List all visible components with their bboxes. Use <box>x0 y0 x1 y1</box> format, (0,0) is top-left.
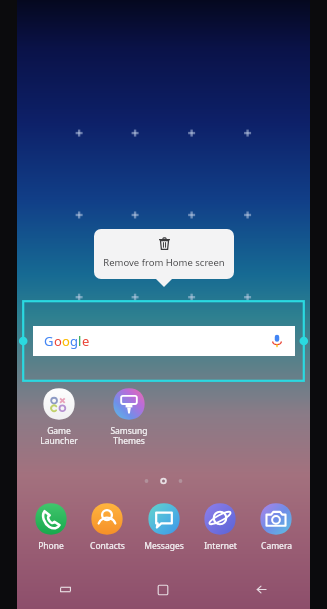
other: Samsung Themes <box>112 387 146 421</box>
staticText: Messages <box>144 540 184 552</box>
staticText: l <box>78 332 82 350</box>
button[interactable]: Samsung Themes <box>101 387 157 446</box>
staticText: o <box>62 332 70 350</box>
staticText: Remove from Home screen <box>103 256 225 269</box>
other: Contacts <box>90 502 124 536</box>
other: Voice search <box>270 334 284 348</box>
other: Game Launcher <box>42 387 76 421</box>
staticText: e <box>82 332 90 350</box>
button[interactable]: Camera <box>250 502 302 552</box>
staticText: G <box>44 332 54 350</box>
button[interactable]: Contacts <box>81 502 133 552</box>
staticText: Contacts <box>90 540 125 552</box>
button[interactable]: Home <box>114 570 212 609</box>
button[interactable]: Messages <box>138 502 190 552</box>
button[interactable]: G <box>44 326 284 356</box>
button[interactable]: Internet <box>194 502 246 552</box>
staticText: Internet <box>204 540 237 552</box>
button[interactable]: Back <box>212 570 310 609</box>
button[interactable]: Recent apps <box>17 570 114 609</box>
other: Camera <box>259 502 293 536</box>
button[interactable]: Remove from Home screen <box>94 229 234 279</box>
staticText: Samsung Themes <box>110 425 148 446</box>
staticText: Phone <box>38 540 64 552</box>
other: Phone <box>34 502 68 536</box>
other: Internet <box>203 502 237 536</box>
staticText: Camera <box>261 540 292 552</box>
staticText: o <box>54 332 62 350</box>
other: Messages <box>147 502 181 536</box>
button[interactable]: Game Launcher <box>31 387 87 446</box>
button[interactable]: Phone <box>25 502 77 552</box>
staticText: g <box>70 332 78 350</box>
staticText: Game Launcher <box>40 425 78 446</box>
